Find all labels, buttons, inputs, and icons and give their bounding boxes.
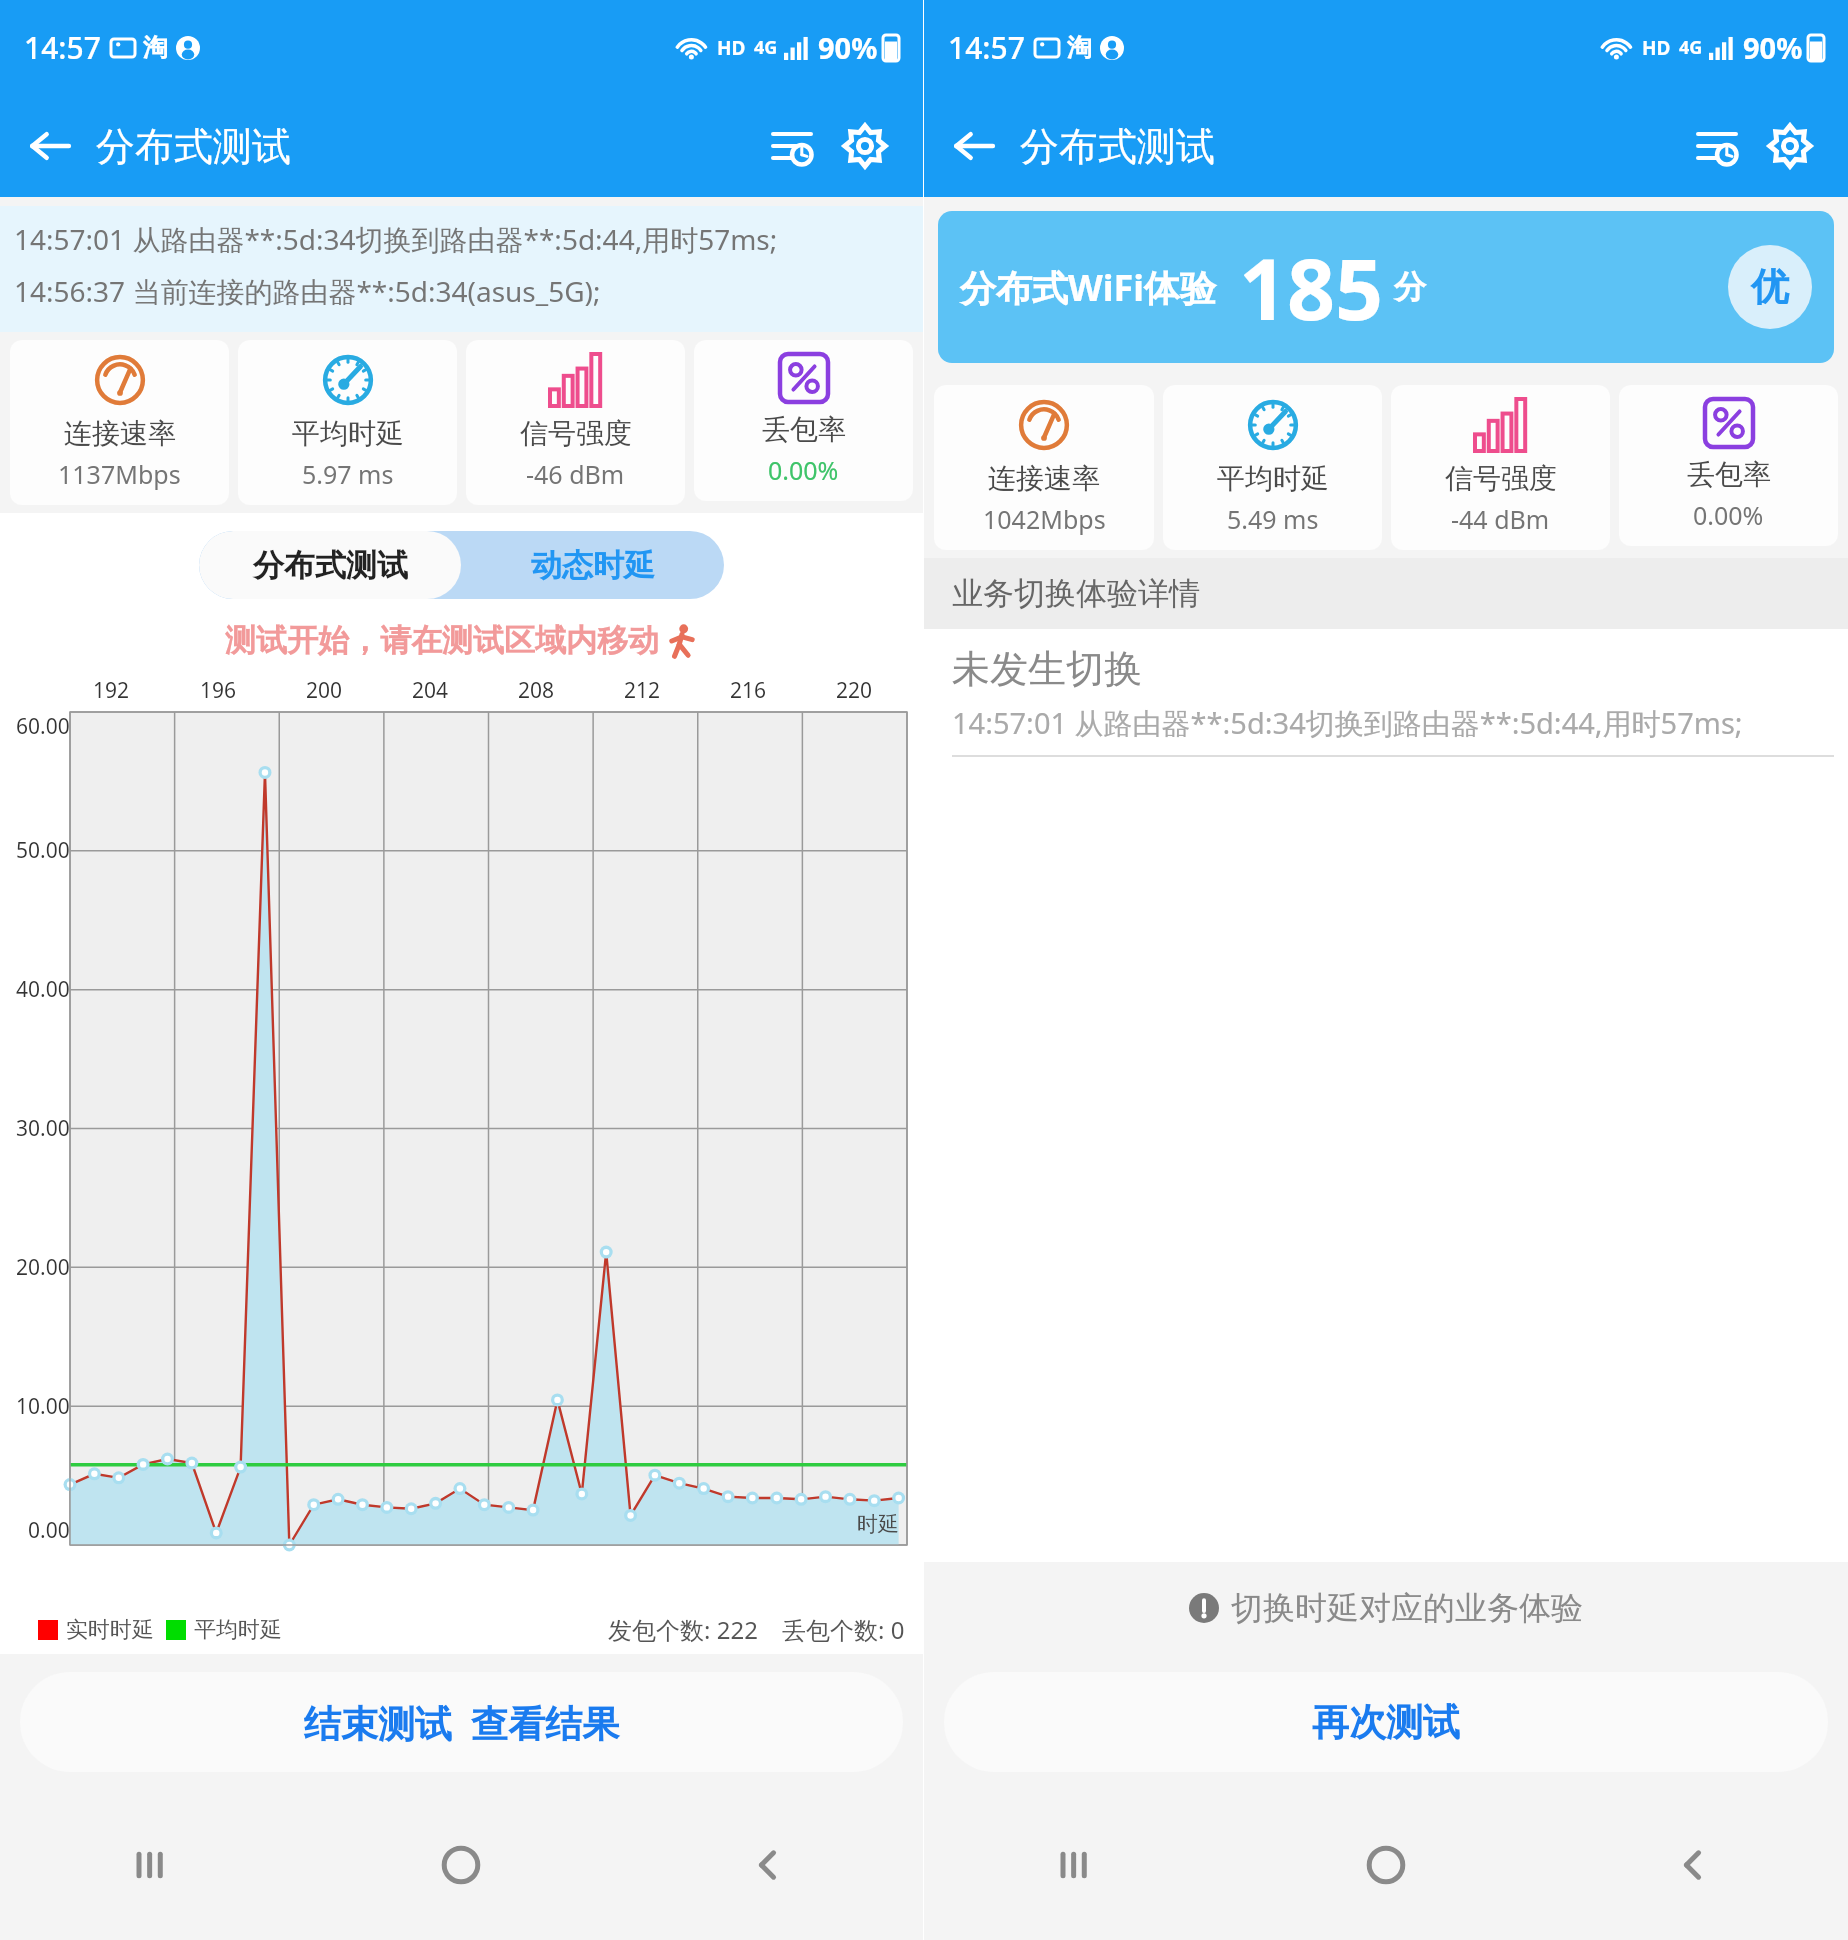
- button[interactable]: Back: [1540, 1790, 1848, 1940]
- staticText: 结束测试 查看结果: [304, 1697, 620, 1748]
- staticText: 60.00: [16, 712, 70, 741]
- staticText: 优: [1751, 263, 1789, 311]
- staticText: 丢包个数: 0: [782, 1613, 905, 1646]
- staticText: -46 dBm: [526, 457, 625, 491]
- staticText: 分: [1394, 267, 1426, 307]
- staticText: 平均时延: [1217, 461, 1329, 496]
- staticText: 204: [412, 676, 449, 705]
- staticText: 平均时延: [292, 416, 404, 451]
- staticText: 1042Mbps: [983, 502, 1106, 536]
- staticText: 4G: [754, 35, 778, 60]
- staticText: 220: [836, 676, 873, 705]
- staticText: 0.00%: [1693, 498, 1764, 532]
- staticText: HD: [717, 35, 746, 61]
- staticText: 信号强度: [1445, 461, 1557, 496]
- button[interactable]: 结束测试 查看结果: [20, 1672, 903, 1772]
- staticText: 连接速率: [988, 461, 1100, 496]
- button[interactable]: 分布式测试: [199, 531, 461, 599]
- staticText: 动态时延: [531, 546, 655, 585]
- button[interactable]: Recents: [924, 1790, 1232, 1940]
- staticText: 14:57:01 从路由器**:5d:34切换到路由器**:5d:44,用时57…: [952, 703, 1743, 743]
- button[interactable]: Recents: [0, 1790, 307, 1940]
- staticText: 90%: [818, 28, 878, 67]
- button[interactable]: Back: [18, 114, 82, 178]
- staticText: 196: [200, 676, 237, 705]
- staticText: 淘: [143, 32, 168, 63]
- staticText: 30.00: [16, 1114, 70, 1143]
- staticText: 5.97 ms: [302, 457, 394, 491]
- button[interactable]: 动态时延: [461, 531, 724, 599]
- staticText: 50.00: [16, 836, 70, 865]
- staticText: 丢包率: [762, 412, 846, 447]
- button[interactable]: Back: [615, 1790, 923, 1940]
- staticText: 5.49 ms: [1227, 502, 1319, 536]
- staticText: 4G: [1679, 35, 1703, 60]
- staticText: 200: [306, 676, 343, 705]
- staticText: 212: [624, 676, 661, 705]
- staticText: 192: [93, 676, 130, 705]
- staticText: 0.00%: [768, 453, 839, 487]
- staticText: 185: [1239, 230, 1384, 344]
- staticText: 信号强度: [520, 416, 632, 451]
- staticText: 10.00: [16, 1392, 70, 1421]
- button[interactable]: 平均时延: [1163, 385, 1382, 550]
- staticText: -44 dBm: [1451, 502, 1550, 536]
- staticText: 90%: [1743, 28, 1803, 67]
- button[interactable]: Home: [307, 1790, 615, 1940]
- button[interactable]: 信号强度: [1391, 385, 1610, 550]
- button[interactable]: Settings: [829, 110, 901, 182]
- button[interactable]: 信号强度: [466, 340, 685, 505]
- button[interactable]: 丢包率: [694, 340, 913, 501]
- staticText: 14:57: [948, 27, 1025, 68]
- staticText: 40.00: [16, 975, 70, 1004]
- button[interactable]: 丢包率: [1619, 385, 1838, 546]
- staticText: 平均时延: [194, 1616, 282, 1644]
- staticText: 发包个数: 222: [608, 1613, 758, 1646]
- staticText: 分布式测试: [96, 122, 291, 171]
- staticText: 分布式WiFi体验: [960, 263, 1217, 312]
- staticText: 14:57: [24, 27, 101, 68]
- staticText: 14:57:01 从路由器**:5d:34切换到路由器**:5d:44,用时57…: [14, 220, 778, 258]
- staticText: 20.00: [16, 1253, 70, 1282]
- button[interactable]: History: [1682, 110, 1754, 182]
- button[interactable]: 再次测试: [944, 1672, 1828, 1772]
- button[interactable]: Settings: [1754, 110, 1826, 182]
- staticText: 时延: [857, 1511, 899, 1537]
- staticText: 0.00: [28, 1516, 70, 1545]
- button[interactable]: 连接速率: [10, 340, 229, 505]
- button[interactable]: Back: [942, 114, 1006, 178]
- staticText: 分布式测试: [253, 546, 408, 585]
- staticText: 淘: [1067, 32, 1092, 63]
- staticText: 216: [730, 676, 767, 705]
- staticText: 208: [518, 676, 555, 705]
- staticText: 业务切换体验详情: [952, 574, 1200, 613]
- staticText: 14:56:37 当前连接的路由器**:5d:34(asus_5G);: [14, 272, 601, 310]
- staticText: 再次测试: [1312, 1699, 1460, 1746]
- staticText: 1137Mbps: [58, 457, 181, 491]
- staticText: 丢包率: [1687, 457, 1771, 492]
- staticText: 未发生切换: [952, 645, 1142, 693]
- staticText: 切换时延对应的业务体验: [1231, 1588, 1583, 1628]
- button[interactable]: 平均时延: [238, 340, 457, 505]
- staticText: 分布式测试: [1020, 122, 1215, 171]
- staticText: 测试开始，请在测试区域内移动: [225, 621, 659, 660]
- button[interactable]: 分布式WiFi体验: [938, 211, 1834, 363]
- button[interactable]: History: [757, 110, 829, 182]
- button[interactable]: Home: [1232, 1790, 1540, 1940]
- button[interactable]: 连接速率: [934, 385, 1154, 550]
- staticText: 连接速率: [64, 416, 176, 451]
- staticText: 实时时延: [66, 1616, 154, 1644]
- staticText: HD: [1642, 35, 1671, 61]
